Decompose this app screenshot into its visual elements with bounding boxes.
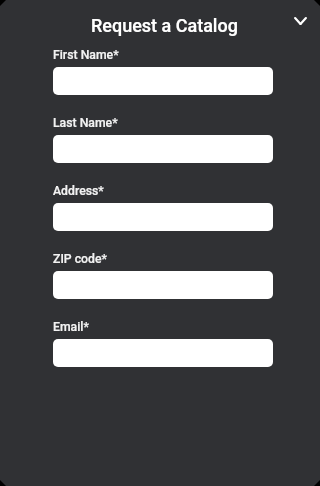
button[interactable]: First Name*: [53, 67, 273, 95]
button[interactable]: Address*: [53, 203, 273, 231]
staticText: Last Name*: [53, 116, 118, 130]
button[interactable]: ZIP code*: [53, 271, 273, 299]
staticText: First Name*: [53, 48, 119, 62]
staticText: ZIP code*: [53, 252, 107, 266]
staticText: Address*: [53, 184, 104, 198]
button[interactable]: Collapse form: [284, 5, 316, 37]
button[interactable]: Email*: [53, 339, 273, 367]
staticText: Email*: [53, 320, 89, 334]
button[interactable]: Last Name*: [53, 135, 273, 163]
staticText: Request a Catalog: [91, 15, 238, 36]
